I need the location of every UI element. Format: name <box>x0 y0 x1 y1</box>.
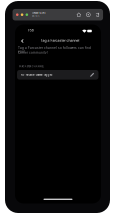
button[interactable]: Back <box>18 36 26 45</box>
staticText: No Farcaster channel tagged <box>21 73 53 76</box>
button[interactable]: Screenshot <box>86 12 90 17</box>
staticText: Tag a Farcaster channel <box>40 38 79 42</box>
button[interactable]: Rotate <box>95 12 100 17</box>
staticText: iOS 18.5 <box>32 15 39 17</box>
staticText: iPhone 16 Pro <box>32 12 45 15</box>
staticText: Tag a Farcaster channel so followers can… <box>18 46 91 53</box>
staticText: 1:58 <box>28 28 34 32</box>
button[interactable]: No Farcaster channel tagged <box>17 70 98 80</box>
staticText: FARCASTER CHANNEL <box>19 65 44 68</box>
staticText: Corner community! <box>18 51 48 54</box>
button[interactable]: Home <box>76 12 81 17</box>
